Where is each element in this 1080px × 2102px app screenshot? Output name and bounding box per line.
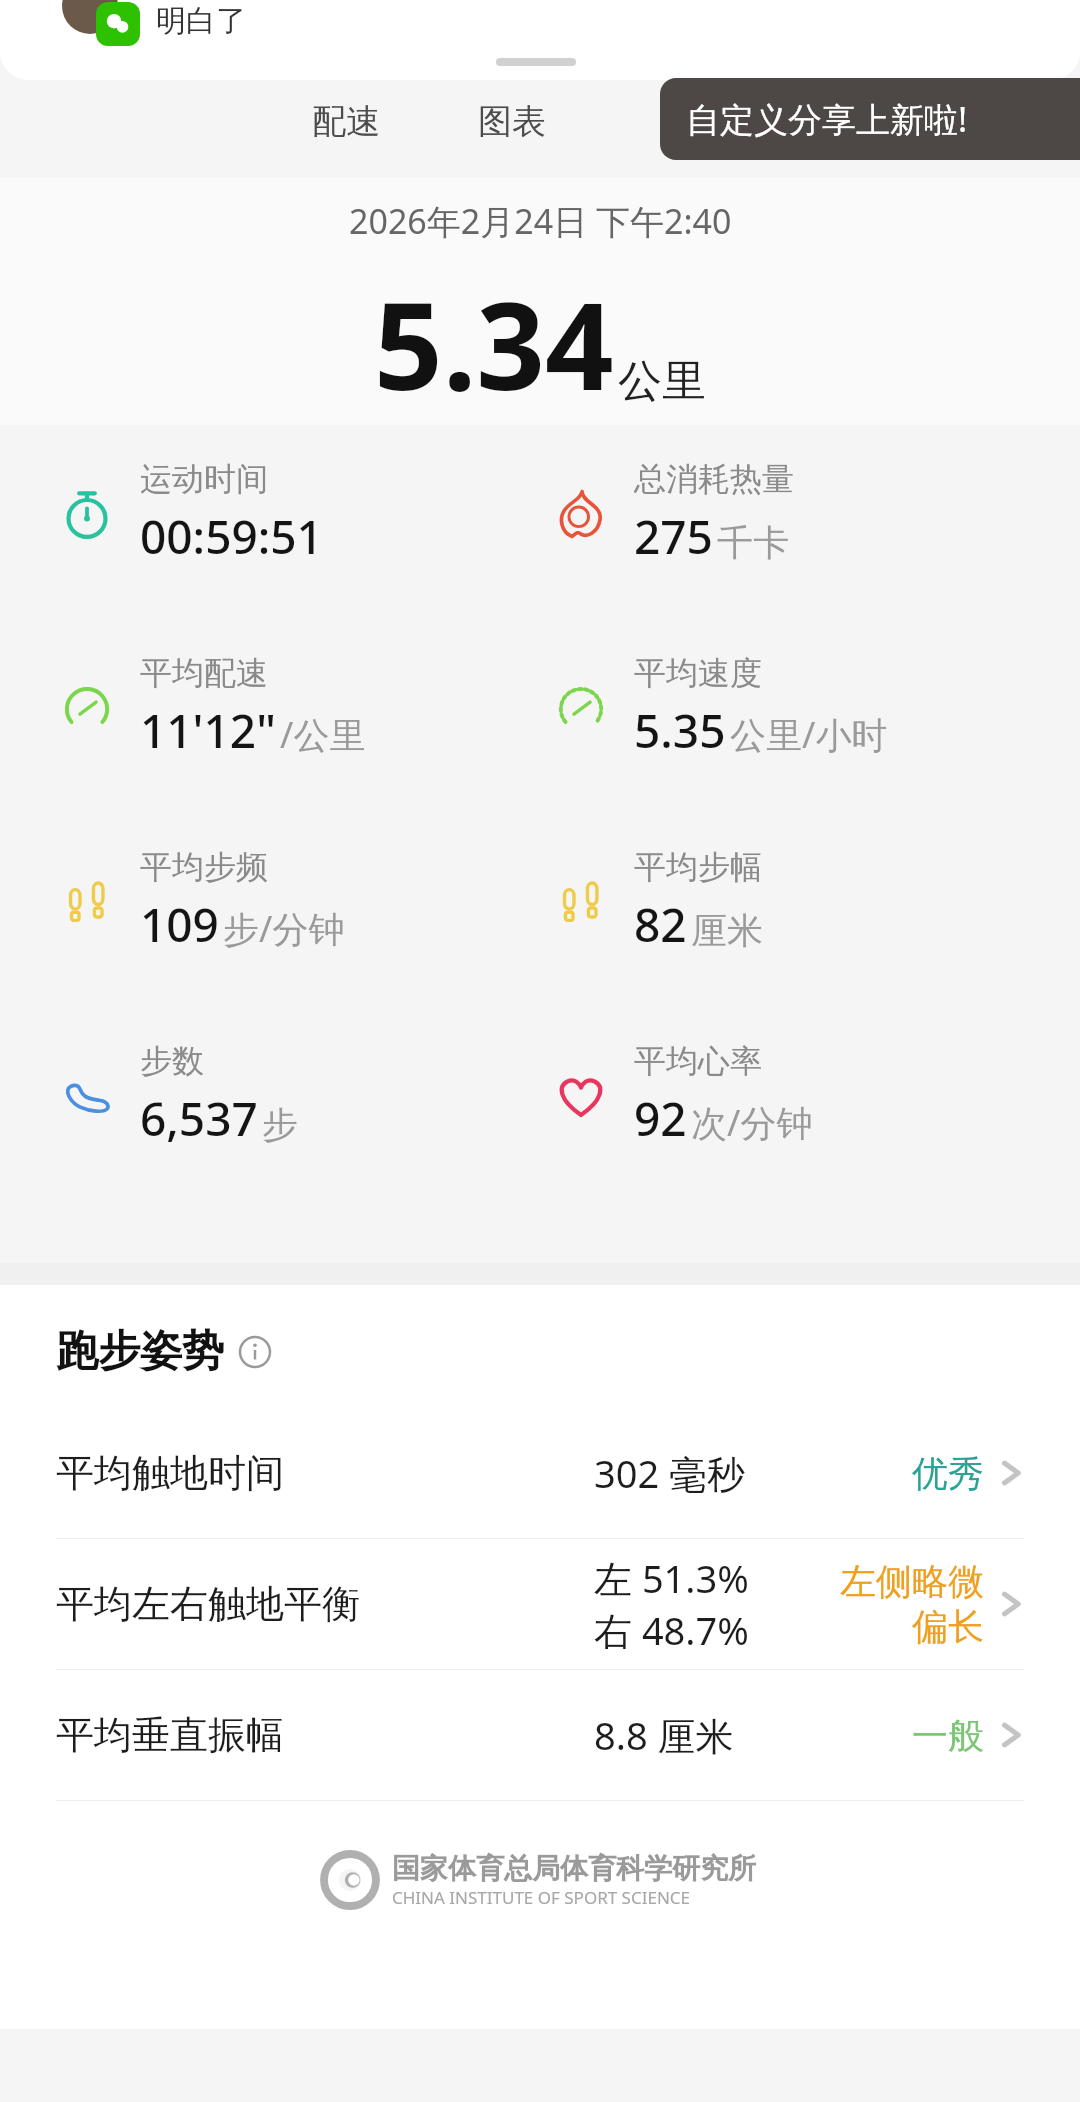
staticText: 平均步频 xyxy=(140,847,268,887)
staticText: 6,537 xyxy=(140,1087,258,1150)
button[interactable]: 平均步频 xyxy=(56,847,540,956)
button[interactable]: 图表 xyxy=(466,92,558,151)
staticText: 275 xyxy=(634,505,713,568)
staticText: 8.8 厘米 xyxy=(594,1709,734,1761)
button[interactable]: 平均触地时间 xyxy=(0,1408,1080,1538)
button[interactable] xyxy=(0,0,1080,80)
button[interactable]: 运动时间 xyxy=(56,459,540,568)
staticText: /公里 xyxy=(280,710,366,759)
button[interactable]: 配速 xyxy=(300,92,392,151)
staticText: 优秀 xyxy=(912,1451,984,1496)
staticText: 一般 xyxy=(912,1713,984,1758)
staticText: 左 51.3% xyxy=(594,1552,749,1604)
staticText: 千卡 xyxy=(717,520,789,565)
staticText: 5.35 xyxy=(634,699,726,762)
staticText: 公里/小时 xyxy=(730,710,888,759)
staticText: 步 xyxy=(262,1102,298,1147)
button[interactable]: 平均配速 xyxy=(56,653,540,762)
staticText: 左侧略微 xyxy=(840,1559,984,1604)
button[interactable]: 平均心率 xyxy=(550,1041,1080,1150)
button[interactable]: 自定义分享上新啦! xyxy=(660,78,1080,160)
staticText: 公里 xyxy=(618,354,706,409)
staticText: 82 xyxy=(634,893,687,956)
staticText: 步数 xyxy=(140,1041,204,1081)
staticText: 国家体育总局体育科学研究所 xyxy=(392,1851,756,1886)
staticText: 平均步幅 xyxy=(634,847,762,887)
staticText: 平均速度 xyxy=(634,653,762,693)
staticText: 平均触地时间 xyxy=(56,1449,284,1497)
staticText: 步/分钟 xyxy=(223,904,345,953)
staticText: 2026年2月24日 下午2:40 xyxy=(349,198,732,244)
staticText: CHINA INSTITUTE OF SPORT SCIENCE xyxy=(392,1886,691,1909)
staticText: 偏长 xyxy=(912,1604,984,1649)
button[interactable]: 平均左右触地平衡 xyxy=(0,1539,1080,1669)
staticText: 5.34 xyxy=(374,262,614,425)
staticText: 平均垂直振幅 xyxy=(56,1711,284,1759)
staticText: 右 48.7% xyxy=(594,1604,749,1656)
staticText: 00:59:51 xyxy=(140,505,323,568)
staticText: 平均左右触地平衡 xyxy=(56,1580,360,1628)
button[interactable]: 步数 xyxy=(56,1041,540,1150)
button[interactable]: 平均步幅 xyxy=(550,847,1080,956)
staticText: 运动时间 xyxy=(140,459,268,499)
button[interactable]: 信息 xyxy=(238,1335,272,1369)
staticText: 自定义分享上新啦! xyxy=(686,96,968,142)
button[interactable]: 平均垂直振幅 xyxy=(0,1670,1080,1800)
staticText: 配速 xyxy=(312,100,380,143)
staticText: 平均配速 xyxy=(140,653,268,693)
staticText: 明白了 xyxy=(156,2,246,40)
staticText: 11'12" xyxy=(140,699,276,762)
staticText: 92 xyxy=(634,1087,687,1150)
staticText: 跑步姿势 xyxy=(56,1325,224,1378)
staticText: 总消耗热量 xyxy=(634,459,794,499)
button[interactable]: 平均速度 xyxy=(550,653,1080,762)
staticText: 平均心率 xyxy=(634,1041,762,1081)
button[interactable]: 总消耗热量 xyxy=(550,459,1080,568)
staticText: 图表 xyxy=(478,100,546,143)
staticText: 次/分钟 xyxy=(691,1098,813,1147)
staticText: 302 毫秒 xyxy=(594,1447,746,1499)
staticText: 厘米 xyxy=(691,908,763,953)
staticText: 109 xyxy=(140,893,219,956)
